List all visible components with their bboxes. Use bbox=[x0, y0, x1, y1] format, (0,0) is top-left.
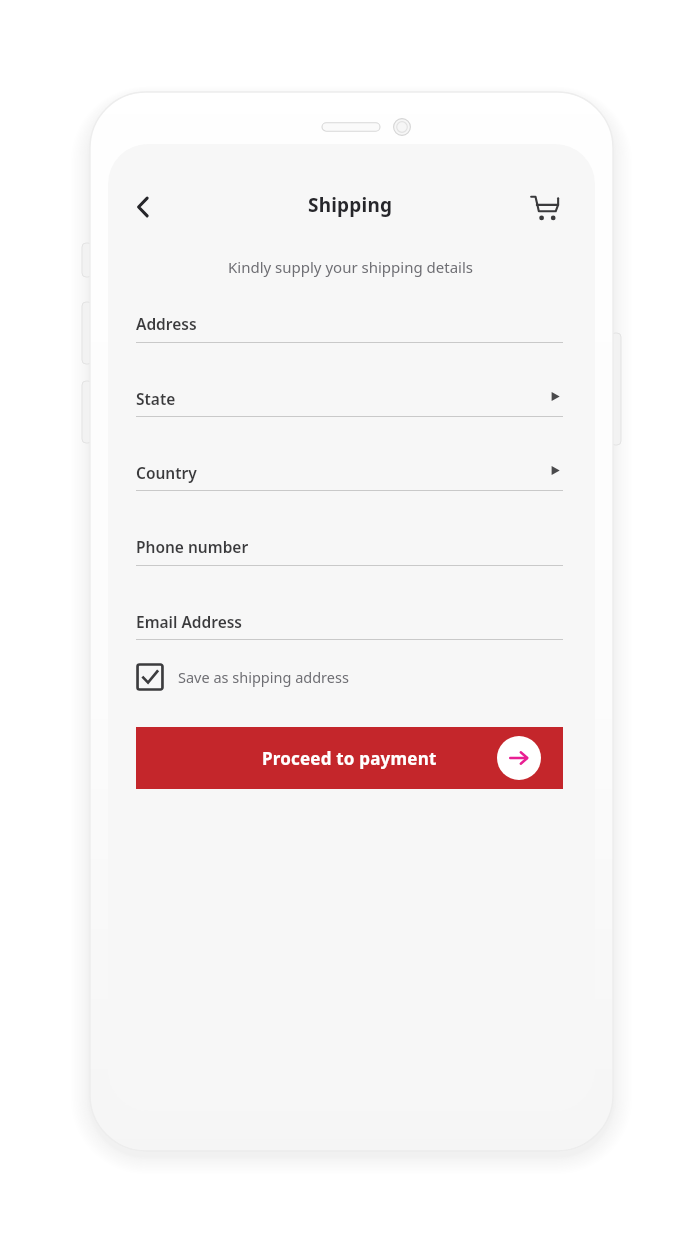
button[interactable]: Back bbox=[120, 184, 166, 230]
button[interactable]: Save as shipping address bbox=[136, 658, 349, 696]
staticText: Save as shipping address bbox=[178, 667, 349, 687]
button[interactable]: Country bbox=[136, 454, 563, 498]
staticText: Country bbox=[136, 462, 197, 483]
button[interactable]: Email Address bbox=[136, 603, 563, 647]
staticText: Kindly supply your shipping details bbox=[228, 257, 473, 277]
staticText: Address bbox=[136, 313, 197, 334]
staticText: Shipping bbox=[308, 192, 393, 218]
button[interactable]: State bbox=[136, 380, 563, 424]
staticText: State bbox=[136, 388, 176, 409]
button[interactable]: Phone number bbox=[136, 528, 563, 573]
button[interactable]: Cart bbox=[521, 184, 567, 230]
staticText: Phone number bbox=[136, 536, 249, 557]
button[interactable]: Address bbox=[136, 305, 563, 350]
staticText: Proceed to payment bbox=[262, 747, 437, 770]
button[interactable]: Proceed to payment bbox=[136, 727, 563, 789]
staticText: Email Address bbox=[136, 611, 242, 632]
